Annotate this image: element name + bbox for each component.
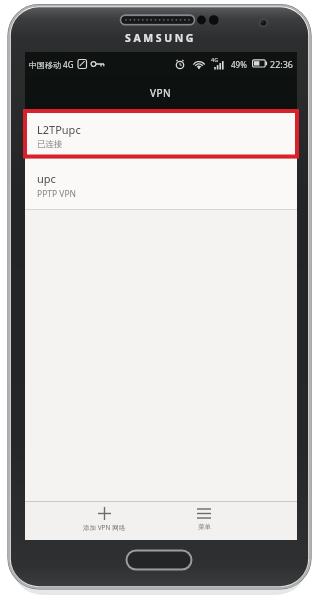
staticText: 已连接 — [37, 139, 63, 150]
button[interactable]: 添加 VPN 网络 — [59, 502, 149, 540]
button[interactable]: 菜单 — [169, 502, 239, 540]
staticText: SAMSUNG — [125, 31, 197, 44]
staticText: 添加 VPN 网络 — [83, 523, 126, 532]
staticText: 49% — [231, 59, 247, 70]
staticText: 菜单 — [198, 523, 211, 531]
staticText: 4G — [211, 56, 219, 63]
staticText: VPN — [150, 86, 172, 100]
staticText: upc — [37, 171, 56, 186]
staticText: 中国移动 4G — [29, 59, 74, 70]
button[interactable]: upc — [25, 159, 297, 209]
staticText: L2TPupc — [37, 122, 81, 137]
staticText: PPTP VPN — [37, 188, 77, 200]
staticText: 22:36 — [270, 58, 294, 70]
button[interactable]: L2TPupc — [25, 109, 297, 158]
